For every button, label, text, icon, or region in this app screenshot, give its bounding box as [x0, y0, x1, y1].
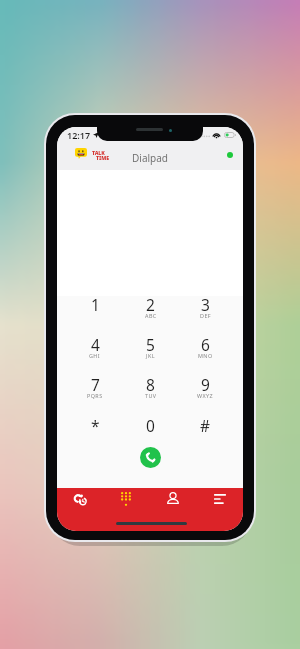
staticText: GHI — [89, 352, 101, 359]
staticText: 12:17 — [67, 129, 91, 141]
button[interactable]: Recent calls — [57, 488, 103, 531]
staticText: ABC — [145, 312, 157, 319]
staticText: # — [200, 415, 211, 436]
button[interactable]: More options — [196, 488, 243, 531]
button[interactable]: 6 — [178, 336, 233, 376]
button[interactable]: Call — [140, 447, 161, 468]
staticText: DEF — [200, 312, 212, 319]
staticText: 4 — [91, 334, 100, 355]
button[interactable]: Contacts — [149, 488, 196, 531]
staticText: 3 — [201, 294, 210, 315]
staticText: 8 — [146, 374, 155, 395]
button[interactable]: 0 — [123, 416, 178, 457]
staticText: 9 — [201, 374, 210, 395]
button[interactable]: * — [67, 416, 123, 457]
staticText: JKL — [146, 352, 155, 359]
button[interactable]: 1 — [67, 296, 123, 336]
button[interactable]: 2 — [123, 296, 178, 336]
button[interactable]: # — [178, 416, 233, 457]
staticText: Dialpad — [132, 151, 168, 165]
staticText: 2 — [146, 294, 155, 315]
staticText: TALK — [92, 149, 105, 156]
staticText: WXYZ — [197, 392, 214, 399]
staticText: TIME — [96, 154, 110, 161]
staticText: 5 — [146, 334, 155, 355]
staticText: 6 — [201, 334, 210, 355]
staticText: 1 — [91, 294, 100, 315]
button[interactable]: 3 — [178, 296, 233, 336]
button[interactable]: Dialpad — [103, 488, 149, 531]
staticText: * — [91, 415, 100, 436]
button[interactable]: 5 — [123, 336, 178, 376]
button[interactable]: 4 — [67, 336, 123, 376]
staticText: TUV — [145, 392, 157, 399]
staticText: 7 — [91, 374, 100, 395]
staticText: MNO — [198, 352, 213, 359]
button[interactable]: 7 — [67, 376, 123, 416]
staticText: 0 — [146, 415, 155, 436]
button[interactable]: 8 — [123, 376, 178, 416]
button[interactable]: 9 — [178, 376, 233, 416]
staticText: PQRS — [87, 392, 103, 399]
